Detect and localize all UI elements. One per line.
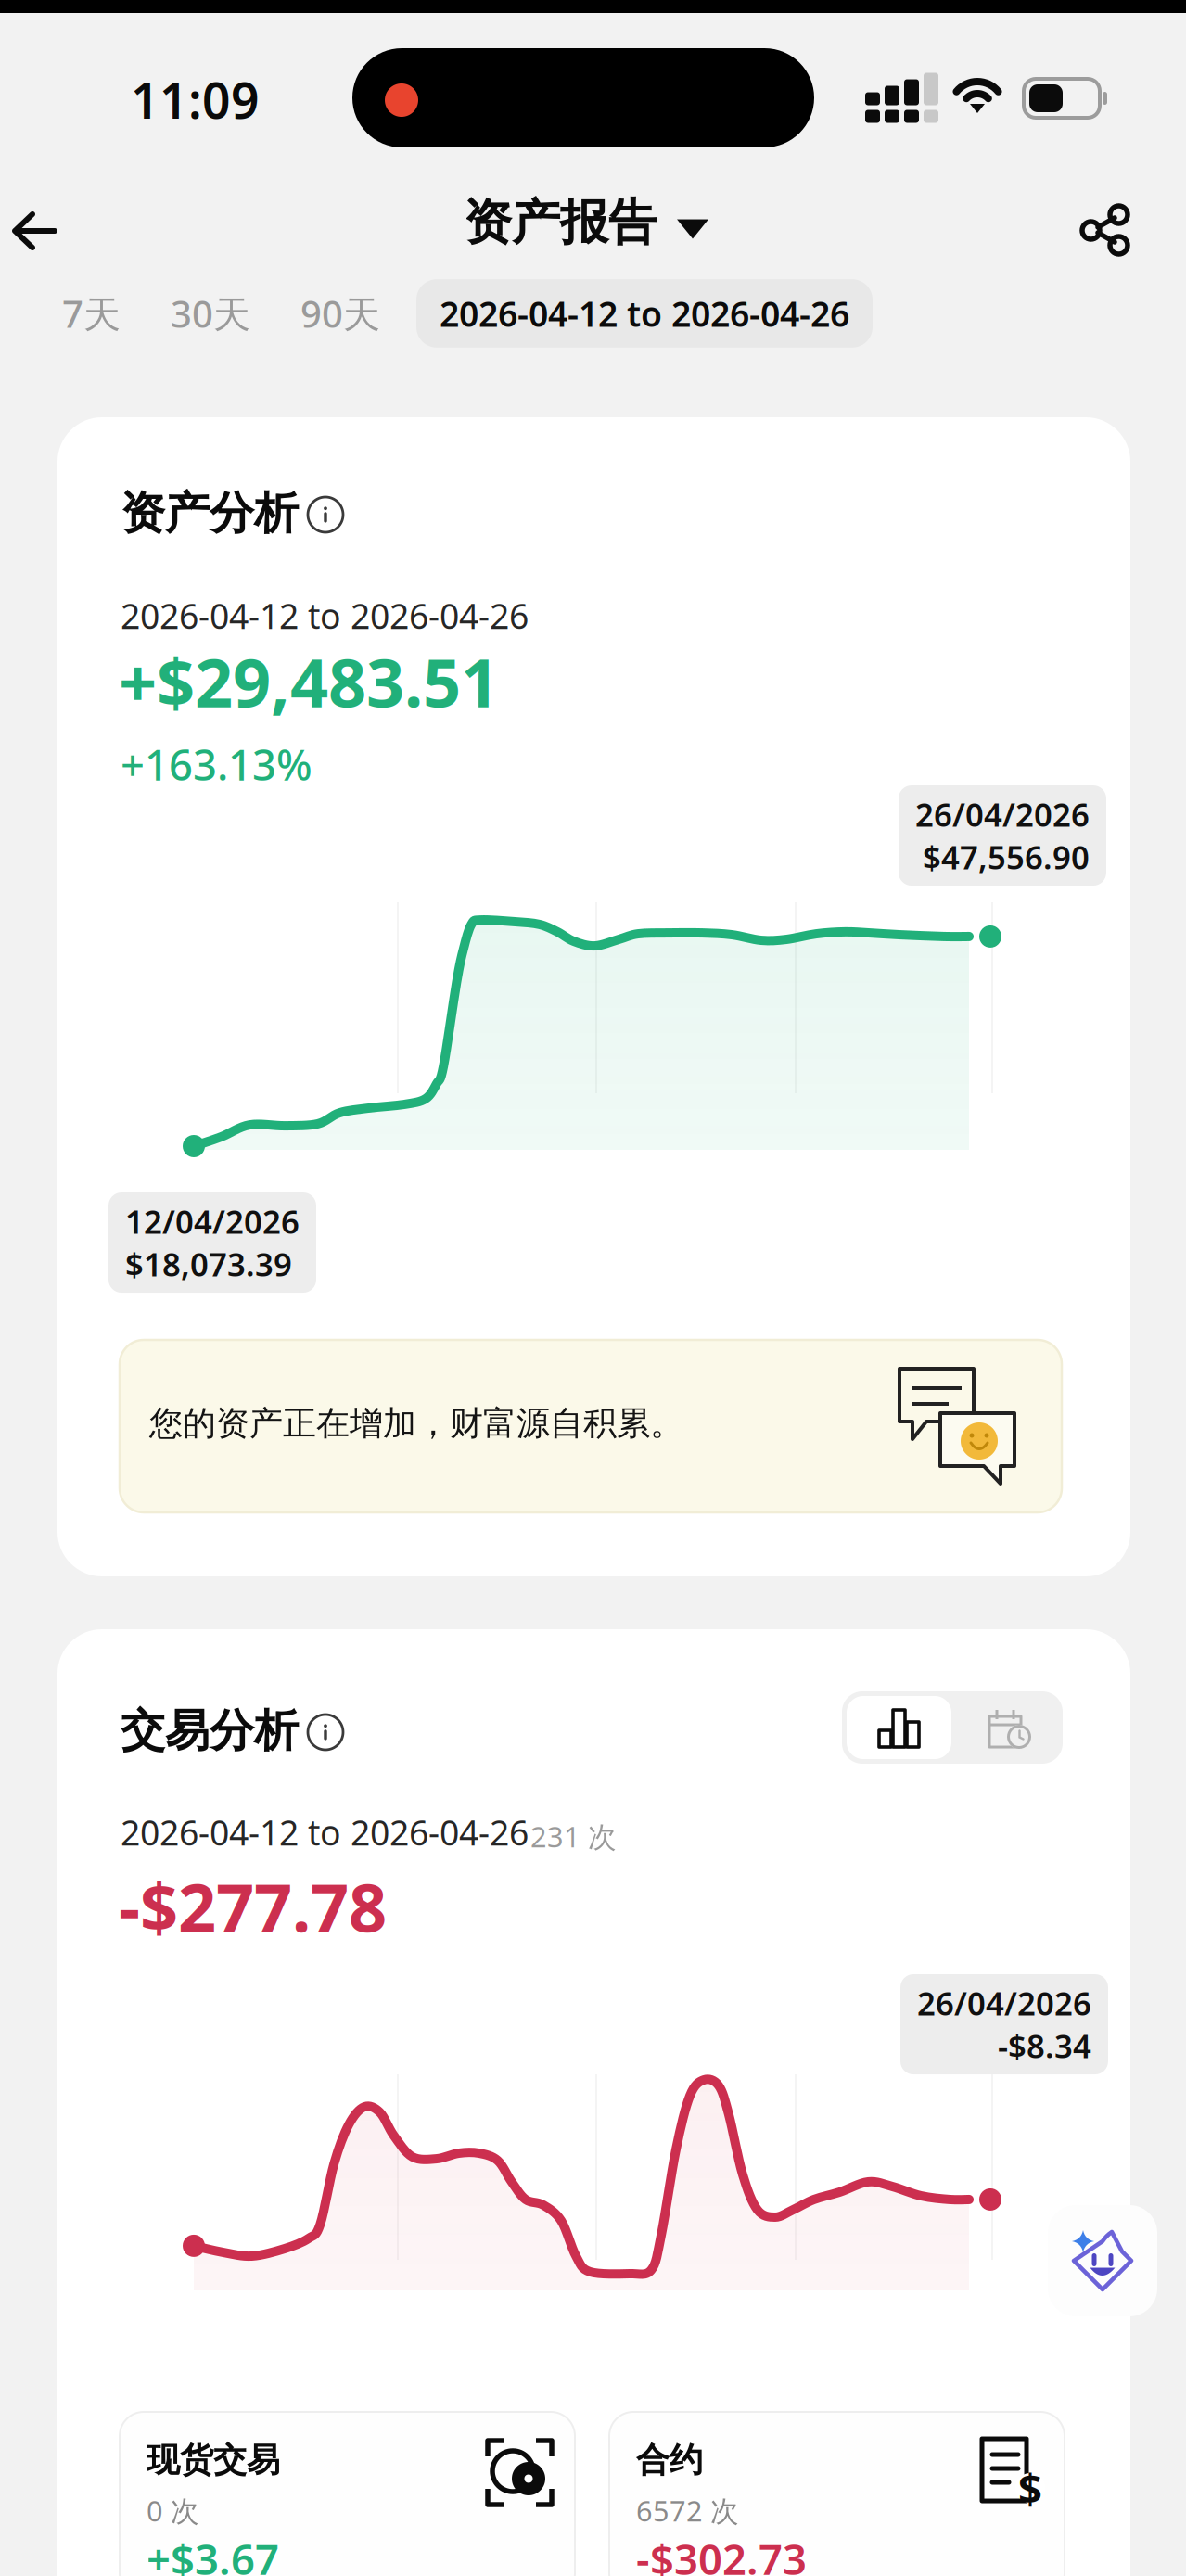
button[interactable]: 2026-04-12 to 2026-04-26 bbox=[416, 279, 873, 348]
staticText: 0 次 bbox=[147, 2492, 199, 2529]
staticText: -$8.34 bbox=[998, 2024, 1091, 2067]
staticText: +$3.67 bbox=[147, 2531, 279, 2576]
staticText: -$302.73 bbox=[636, 2531, 807, 2576]
staticText: $47,556.90 bbox=[923, 835, 1090, 878]
staticText: 90天 bbox=[300, 289, 380, 338]
staticText: 6572 次 bbox=[636, 2492, 739, 2529]
staticText: 2026-04-12 to 2026-04-26 bbox=[121, 593, 529, 639]
button[interactable]: 90天 bbox=[279, 278, 402, 349]
button[interactable]: 30天 bbox=[149, 278, 272, 349]
staticText: 您的资产正在增加，财富源自积累。 bbox=[149, 1403, 683, 1444]
staticText: 26/04/2026 bbox=[917, 1982, 1091, 2024]
staticText: $18,073.39 bbox=[125, 1243, 292, 1285]
staticText: 2026-04-12 to 2026-04-26 bbox=[121, 1809, 529, 1855]
staticText: 2026-04-12 to 2026-04-26 bbox=[440, 290, 849, 336]
button[interactable]: 7天 bbox=[41, 278, 142, 349]
staticText: 现货交易 bbox=[147, 2440, 280, 2481]
button[interactable]: 资产报告 bbox=[447, 174, 725, 271]
staticText: 资产分析 bbox=[121, 486, 299, 541]
button[interactable]: AI assistant bbox=[1048, 2205, 1157, 2316]
staticText: -$277.78 bbox=[119, 1862, 387, 1951]
staticText: 30天 bbox=[171, 289, 250, 338]
staticText: 26/04/2026 bbox=[915, 793, 1090, 835]
staticText: +163.13% bbox=[121, 736, 312, 792]
button[interactable]: Chart view mode bbox=[842, 1691, 1063, 1764]
staticText: $ bbox=[1018, 2460, 1042, 2516]
staticText: 7天 bbox=[62, 289, 121, 338]
staticText: 合约 bbox=[636, 2440, 703, 2481]
staticText: 资产报告 bbox=[464, 193, 657, 252]
staticText: 231 次 bbox=[530, 1817, 617, 1855]
staticText: 12/04/2026 bbox=[125, 1200, 300, 1243]
button[interactable]: Share bbox=[1054, 182, 1158, 278]
button[interactable]: Back bbox=[0, 184, 87, 280]
staticText: +$29,483.51 bbox=[119, 637, 499, 726]
staticText: 11:09 bbox=[131, 67, 260, 132]
staticText: 交易分析 bbox=[121, 1703, 299, 1758]
